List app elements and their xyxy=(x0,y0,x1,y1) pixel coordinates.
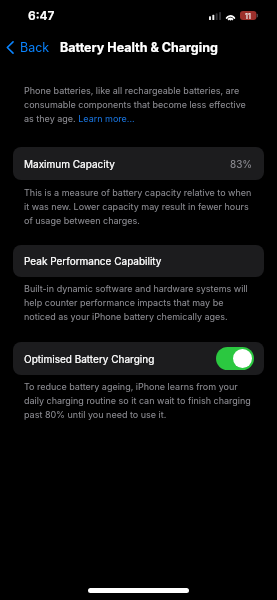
staticText: To reduce battery ageing, iPhone learns … xyxy=(24,381,253,420)
button[interactable]: Optimised Battery Charging xyxy=(13,342,264,375)
button[interactable]: Back xyxy=(2,37,55,58)
staticText: 83% xyxy=(230,158,253,170)
staticText: Optimised Battery Charging xyxy=(24,353,155,365)
button[interactable]: Maximum Capacity xyxy=(13,147,264,180)
staticText: This is a measure of battery capacity re… xyxy=(24,187,253,226)
staticText: 6:47 xyxy=(28,8,55,23)
button[interactable]: Peak Performance Capability xyxy=(13,245,264,277)
button[interactable]: Optimised Battery Charging toggle xyxy=(216,347,254,370)
staticText: Built-in dynamic software and hardware s… xyxy=(24,283,253,322)
staticText: Back xyxy=(20,40,50,55)
staticText: 11 xyxy=(245,12,251,20)
staticText: Battery Health & Charging xyxy=(60,40,218,55)
staticText: Maximum Capacity xyxy=(24,158,115,170)
staticText: Peak Performance Capability xyxy=(24,255,162,267)
staticText: Phone batteries, like all rechargeable b… xyxy=(24,85,253,124)
